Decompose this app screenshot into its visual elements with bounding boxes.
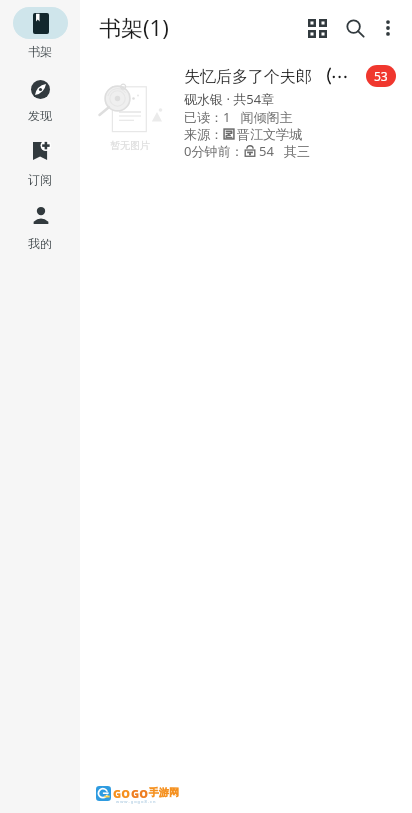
staticText: 53 [374,68,388,84]
staticText: 我的 [28,236,52,251]
staticText: 书架 [28,44,52,59]
button[interactable]: 发现 [0,71,80,123]
button[interactable]: More options [369,9,407,47]
staticText: 暂无图片 [110,139,150,152]
staticText: 手游网 [149,786,179,799]
staticText: 晋江文学城 [237,126,302,142]
staticText: 失忆后多了个夫郎 [184,67,312,87]
staticText: 已读：1 闻倾阁主 [184,108,293,125]
button[interactable]: 书架 [0,7,80,59]
staticText: 砚水银 · 共54章 [184,90,275,108]
staticText: 54 其三 [259,142,311,159]
button[interactable]: Search [336,9,374,47]
staticText: 来源： [184,126,223,142]
button[interactable]: 订阅 [0,135,80,187]
button[interactable]: 暂无图片 [80,56,412,166]
staticText: 订阅 [28,172,52,187]
staticText: 发现 [28,108,52,123]
staticText: 0分钟前： [184,142,244,159]
staticText: 书架(1) [99,12,169,42]
button[interactable]: Grid view [298,9,336,47]
staticText: w w w . g o g o 8 . c n [116,799,156,804]
button[interactable]: 我的 [0,199,80,251]
staticText: GO [131,786,148,801]
staticText: GO [113,786,130,801]
